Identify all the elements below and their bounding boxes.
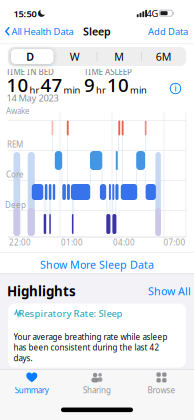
button[interactable]: Add Data [148,25,188,37]
staticText: Highlights [7,282,76,300]
staticText: i [174,83,176,94]
staticText: 10 [6,72,28,97]
staticText: 4G [146,7,158,20]
staticText: Sharing [83,385,111,395]
staticText: All Health Data [11,25,73,37]
staticText: Awake [6,106,30,116]
staticText: 6M [156,49,172,64]
button[interactable]: All Health Data [4,24,74,38]
button[interactable]: W [52,47,97,66]
button[interactable]: 6M [141,47,186,66]
staticText: 22:00 [9,237,31,248]
staticText: W [70,49,80,64]
staticText: REM [7,139,23,150]
button[interactable]: Respiratory Rate: Sleep [8,303,186,367]
staticText: hr [29,84,39,96]
staticText: Show More Sleep Data [40,257,154,272]
staticText: 01:00 [61,237,83,248]
button[interactable]: D [8,47,52,66]
staticText: min [63,84,80,96]
staticText: TIME ASLEEP [84,66,132,77]
staticText: M [114,49,124,64]
staticText: 14 May 2023 [6,92,58,104]
staticText: Add Data [148,25,188,37]
button[interactable]: Summary [2,371,62,397]
staticText: Respiratory Rate: Sleep [18,307,122,319]
staticText: D [26,49,34,64]
button[interactable]: Show All [148,284,191,298]
staticText: TIME IN BED [6,66,54,77]
staticText: Core [6,169,24,180]
button[interactable]: More Information [169,82,181,94]
staticText: 15:50 [13,7,36,20]
staticText: min [130,84,147,96]
button[interactable]: M [97,47,141,66]
staticText: 10 [107,72,129,97]
button[interactable]: Sharing [67,371,127,397]
staticText: 47 [40,72,62,97]
staticText: Summary [15,385,49,395]
staticText: Show All [148,284,191,298]
staticText: hr [96,84,106,96]
staticText: Sleep [83,24,111,38]
staticText: 07:00 [163,237,185,248]
staticText: 04:00 [113,237,135,248]
button[interactable]: Browse [131,371,191,397]
button[interactable]: Show More Sleep Data [0,256,194,273]
staticText: 9 [84,72,95,97]
staticText: Your average breathing rate while asleep… [13,332,167,363]
staticText: Deep [5,200,26,210]
staticText: Browse [147,385,175,395]
